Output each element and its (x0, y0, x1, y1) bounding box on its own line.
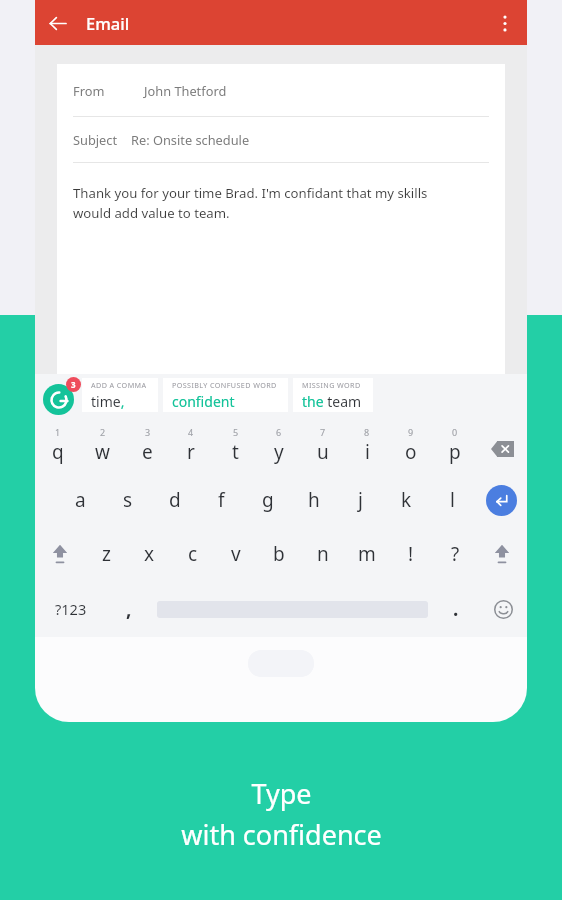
staticText: 2 (100, 426, 106, 438)
button[interactable]: MISSING WORD (293, 378, 373, 412)
button[interactable]: v (214, 527, 257, 581)
staticText: y (274, 439, 284, 465)
button[interactable]: a (57, 473, 104, 527)
button[interactable]: j (337, 473, 383, 527)
staticText: From (73, 82, 105, 99)
staticText: k (401, 487, 412, 513)
button[interactable]: b (257, 527, 301, 581)
staticText: Re: Onsite schedule (131, 131, 250, 148)
staticText: ? (451, 541, 460, 567)
staticText: w (95, 439, 110, 465)
button[interactable]: Emoji (479, 581, 527, 637)
button[interactable]: l (429, 473, 475, 527)
button[interactable]: . (433, 581, 479, 637)
button[interactable]: ! (389, 527, 433, 581)
staticText: b (273, 541, 285, 567)
staticText: z (102, 541, 111, 567)
staticText: m (358, 541, 376, 567)
staticText: Subject (73, 131, 118, 148)
staticText: 8 (364, 426, 370, 438)
staticText: John Thetford (144, 82, 227, 99)
button[interactable]: m (345, 527, 389, 581)
staticText: 9 (408, 426, 414, 438)
staticText: Email (86, 12, 130, 34)
staticText: POSSIBLY CONFUSED WORD (172, 380, 277, 390)
staticText: the team (302, 392, 362, 411)
button[interactable]: h (291, 473, 337, 527)
button[interactable]: g (245, 473, 291, 527)
staticText: ! (408, 541, 414, 567)
staticText: q (52, 439, 64, 465)
staticText: , (126, 596, 132, 622)
button[interactable]: , (107, 581, 151, 637)
button[interactable]: 4 (169, 417, 213, 473)
staticText: a (75, 487, 86, 513)
staticText: e (142, 439, 153, 465)
button[interactable]: ADD A COMMA (82, 378, 158, 412)
button[interactable]: 6 (257, 417, 301, 473)
button[interactable]: n (301, 527, 345, 581)
staticText: 0 (452, 426, 458, 438)
staticText: l (450, 487, 455, 513)
button[interactable]: z (85, 527, 128, 581)
button[interactable]: c (171, 527, 214, 581)
button[interactable]: f (198, 473, 245, 527)
button[interactable]: 2 (80, 417, 125, 473)
staticText: d (169, 487, 181, 513)
button[interactable]: 7 (301, 417, 345, 473)
staticText: Thank you for your time Brad. I'm confid… (73, 184, 428, 222)
button[interactable]: Caps lock (477, 527, 527, 581)
button[interactable]: d (151, 473, 198, 527)
button[interactable]: Enter (475, 473, 527, 527)
button[interactable]: ?123 (35, 581, 107, 637)
staticText: 7 (320, 426, 326, 438)
staticText: g (262, 487, 274, 513)
staticText: n (317, 541, 329, 567)
staticText: 1 (55, 426, 61, 438)
staticText: 5 (233, 426, 239, 438)
staticText: i (365, 439, 370, 465)
staticText: c (188, 541, 198, 567)
staticText: 6 (276, 426, 282, 438)
button[interactable]: POSSIBLY CONFUSED WORD (163, 378, 288, 412)
staticText: s (123, 487, 133, 513)
staticText: p (449, 439, 461, 465)
button[interactable]: x (128, 527, 171, 581)
staticText: MISSING WORD (302, 380, 361, 390)
staticText: confident (172, 392, 235, 411)
staticText: 3 (145, 426, 151, 438)
staticText: ADD A COMMA (91, 380, 147, 390)
staticText: ?123 (55, 599, 87, 619)
staticText: v (231, 541, 241, 567)
button[interactable]: 5 (213, 417, 257, 473)
button[interactable]: ? (433, 527, 477, 581)
staticText: f (218, 487, 225, 513)
button[interactable]: More options (483, 1, 527, 45)
staticText: 3 (71, 379, 76, 390)
staticText: u (317, 439, 329, 465)
button[interactable]: 1 (35, 417, 80, 473)
staticText: Type with confidence (181, 775, 382, 853)
button[interactable]: 8 (345, 417, 389, 473)
button[interactable]: Space (151, 581, 433, 637)
button[interactable]: Back (35, 1, 79, 45)
staticText: t (232, 439, 239, 465)
button[interactable]: 9 (389, 417, 433, 473)
button[interactable]: 0 (433, 417, 477, 473)
button[interactable]: k (383, 473, 429, 527)
staticText: x (144, 541, 155, 567)
staticText: j (358, 487, 363, 513)
button[interactable]: s (104, 473, 151, 527)
button[interactable]: Grammarly (43, 384, 74, 415)
button[interactable]: 3 (125, 417, 169, 473)
button[interactable]: Shift (35, 527, 85, 581)
staticText: o (405, 439, 417, 465)
staticText: 4 (188, 426, 194, 438)
staticText: h (308, 487, 320, 513)
staticText: time, (91, 392, 125, 411)
button[interactable]: Backspace (477, 417, 527, 473)
staticText: r (187, 439, 195, 465)
staticText: . (453, 596, 459, 622)
